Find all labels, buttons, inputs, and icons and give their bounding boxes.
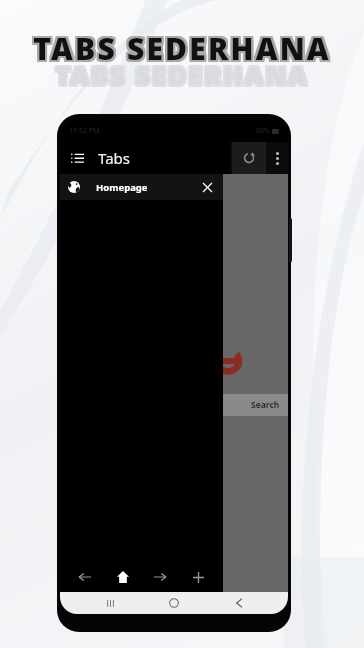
staticText: 11:52 PM xyxy=(69,126,100,136)
staticText: TABS SEDERHANA xyxy=(35,28,333,69)
button[interactable]: Home xyxy=(110,564,136,590)
button[interactable]: Search xyxy=(223,394,288,416)
staticText: TABS SEDERHANA xyxy=(53,56,307,90)
staticText: TABS SEDERHANA xyxy=(33,26,331,67)
button[interactable]: Refresh xyxy=(232,142,266,174)
staticText: TABS SEDERHANA xyxy=(31,26,329,67)
button[interactable]: More options xyxy=(266,142,288,174)
staticText: TABS SEDERHANA xyxy=(55,60,309,94)
staticText: TABS SEDERHANA xyxy=(35,30,333,71)
staticText: TABS SEDERHANA xyxy=(53,58,307,92)
staticText: TABS SEDERHANA xyxy=(35,26,333,67)
staticText: Search xyxy=(251,399,280,411)
button[interactable]: New tab xyxy=(185,564,211,590)
staticText: TABS SEDERHANA xyxy=(57,58,311,92)
button[interactable]: Close tab xyxy=(199,179,215,195)
button[interactable]: Recent apps xyxy=(95,592,125,614)
button[interactable]: Back xyxy=(72,564,98,590)
button[interactable]: Menu xyxy=(64,145,90,171)
staticText: Tabs xyxy=(98,148,130,168)
staticText: TABS SEDERHANA xyxy=(31,28,329,69)
button[interactable]: Forward xyxy=(147,564,173,590)
staticText: TABS SEDERHANA xyxy=(55,58,309,92)
staticText: 80% xyxy=(256,126,270,136)
staticText: TABS SEDERHANA xyxy=(33,30,331,71)
staticText: TABS SEDERHANA xyxy=(57,60,311,94)
staticText: Homepage xyxy=(96,181,148,194)
staticText: TABS SEDERHANA xyxy=(55,56,309,90)
button[interactable]: Homepage xyxy=(60,174,223,200)
staticText: TABS SEDERHANA xyxy=(53,60,307,94)
button[interactable]: Home xyxy=(159,592,189,614)
button[interactable]: Back xyxy=(224,592,254,614)
staticText: TABS SEDERHANA xyxy=(33,28,331,69)
staticText: TABS SEDERHANA xyxy=(57,56,311,90)
staticText: TABS SEDERHANA xyxy=(31,30,329,71)
